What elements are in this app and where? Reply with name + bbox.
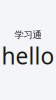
staticText: hello bbox=[1, 41, 54, 71]
staticText: 学习通 bbox=[14, 29, 41, 41]
